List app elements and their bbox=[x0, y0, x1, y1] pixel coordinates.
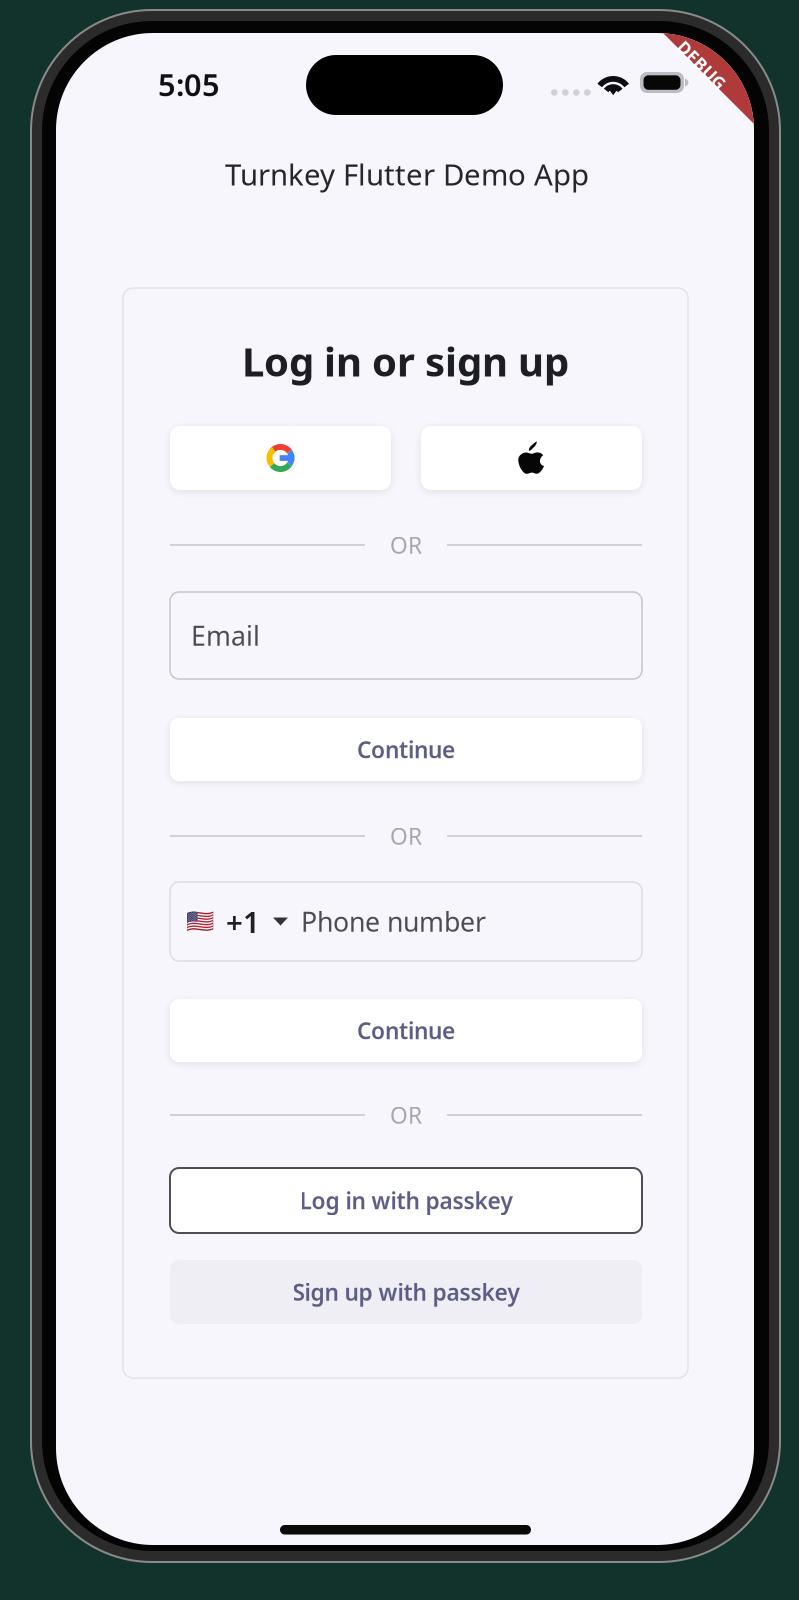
staticText: Email bbox=[191, 618, 260, 653]
staticText: 5:05 bbox=[158, 64, 220, 105]
staticText: DEBUG bbox=[671, 53, 732, 76]
staticText: OR bbox=[390, 530, 422, 560]
staticText: OR bbox=[390, 821, 422, 851]
staticText: Continue bbox=[357, 734, 455, 764]
staticText: +1 bbox=[226, 902, 260, 941]
button[interactable]: Continue with Google bbox=[170, 426, 391, 490]
staticText: Sign up with passkey bbox=[292, 1277, 519, 1307]
staticText: Log in or sign up bbox=[242, 334, 569, 387]
staticText: Turnkey Flutter Demo App bbox=[225, 154, 589, 193]
button[interactable]: Log in with passkey bbox=[170, 1168, 642, 1233]
staticText: Phone number bbox=[301, 904, 486, 939]
button[interactable]: Continue bbox=[170, 718, 642, 781]
staticText: OR bbox=[390, 1100, 422, 1130]
button[interactable]: Continue with Apple bbox=[421, 426, 642, 490]
button[interactable]: Sign up with passkey bbox=[170, 1260, 642, 1324]
staticText: 🇺🇸 bbox=[186, 909, 214, 934]
button[interactable]: Email bbox=[170, 592, 642, 679]
button[interactable]: Continue bbox=[170, 999, 642, 1062]
staticText: Log in with passkey bbox=[299, 1185, 512, 1215]
staticText: Continue bbox=[357, 1015, 455, 1045]
button[interactable]: 🇺🇸 bbox=[170, 882, 642, 961]
